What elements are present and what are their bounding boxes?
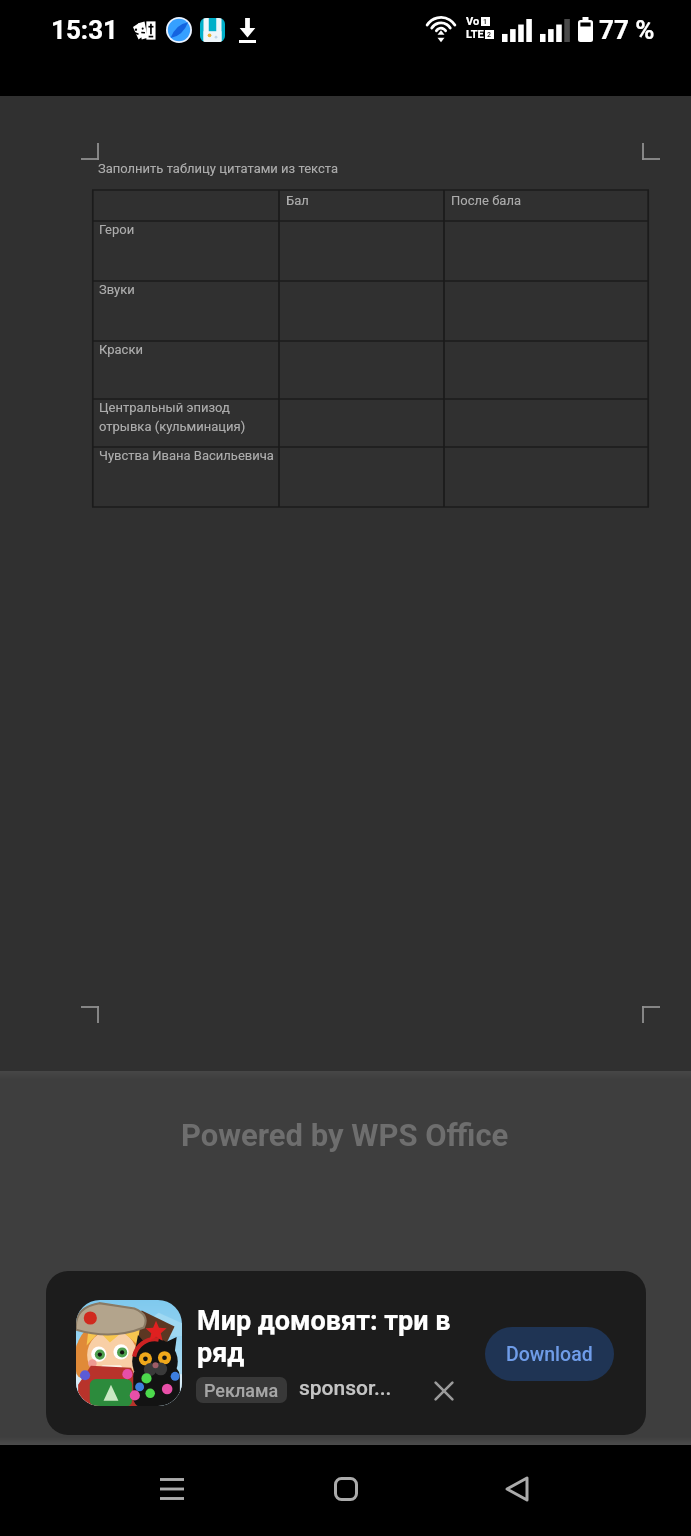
staticText: Краски xyxy=(99,342,143,357)
staticText: Заполнить таблицу цитатами из текста xyxy=(98,161,339,176)
staticText: Звуки xyxy=(99,282,135,297)
staticText: Powered by WPS Office xyxy=(181,1117,509,1153)
staticText: Реклама xyxy=(204,1380,279,1401)
button[interactable]: Close ad xyxy=(429,1376,459,1406)
staticText: sponsor... xyxy=(299,1376,392,1401)
button[interactable]: Document page xyxy=(0,96,691,1071)
staticText: Центральный эпизод отрывка (кульминация) xyxy=(99,400,246,434)
staticText: 1 xyxy=(483,18,488,26)
staticText: Чувства Ивана Васильевича xyxy=(99,448,274,463)
button[interactable]: Home xyxy=(312,1455,380,1523)
staticText: 2 xyxy=(487,31,492,39)
staticText: 77 % xyxy=(599,15,655,45)
staticText: Download xyxy=(506,1343,593,1366)
staticText: После бала xyxy=(451,193,521,208)
staticText: Мир домовят: три в ряд xyxy=(197,1305,451,1368)
staticText: Vo xyxy=(466,15,480,28)
staticText: LTE xyxy=(466,28,484,41)
button[interactable]: Мир домовят: три в ряд xyxy=(46,1271,646,1435)
staticText: 15:31 xyxy=(51,15,118,45)
button[interactable]: Recent apps xyxy=(138,1455,206,1523)
button[interactable]: Download xyxy=(485,1327,614,1381)
button[interactable]: Back xyxy=(483,1455,551,1523)
staticText: Герои xyxy=(99,222,135,237)
staticText: Бал xyxy=(286,193,309,208)
